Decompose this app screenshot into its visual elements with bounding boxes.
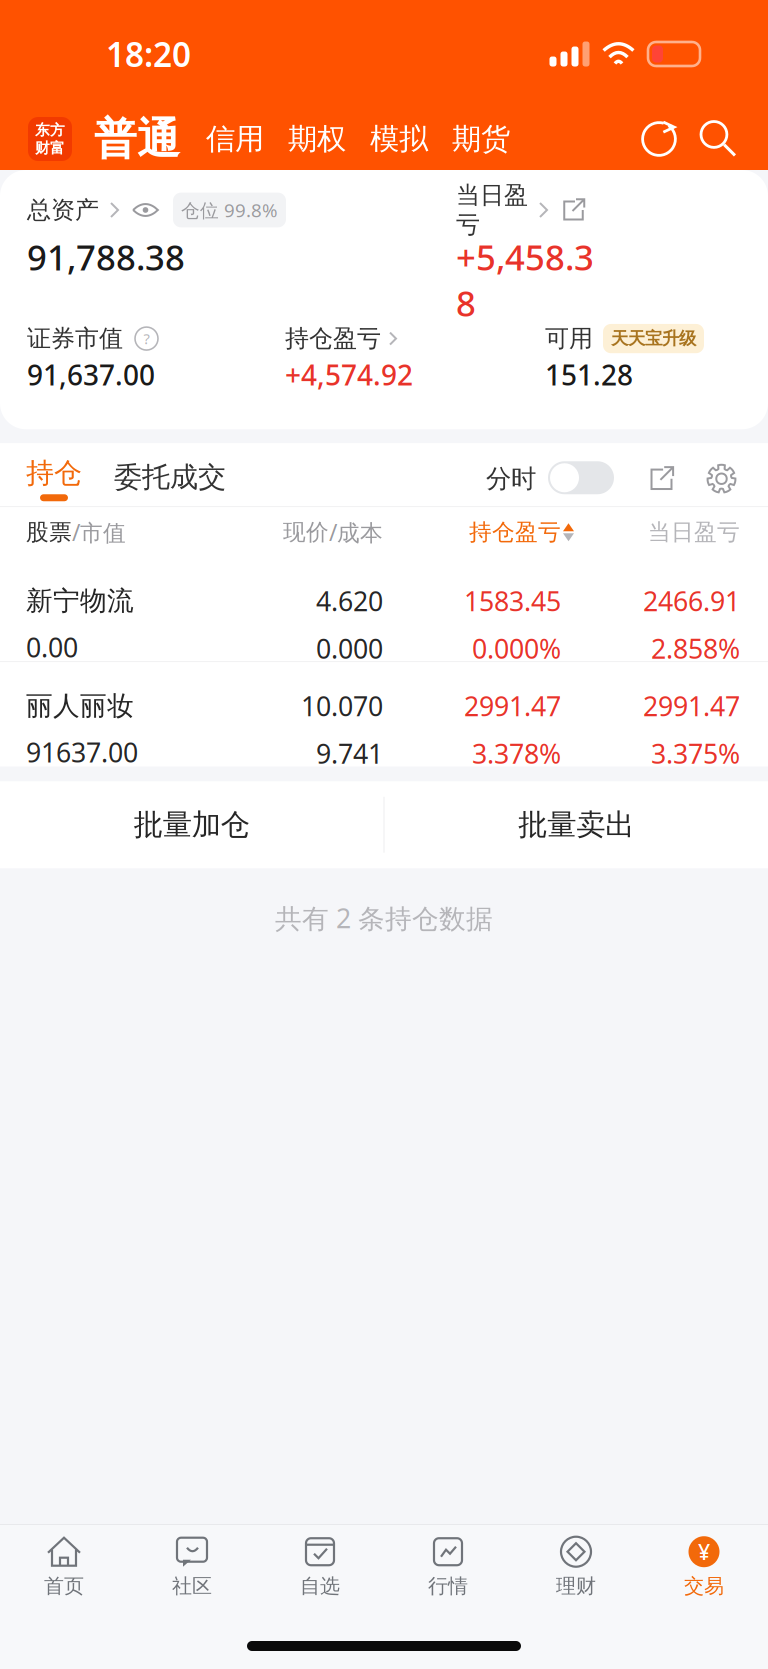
button[interactable]: 持仓 <box>0 456 82 506</box>
staticText: ¥ <box>698 1538 710 1566</box>
staticText: 期货 <box>452 121 510 157</box>
staticText: 持仓 <box>26 456 82 490</box>
staticText: 1583.45 <box>464 583 561 619</box>
button[interactable]: ¥ <box>640 1525 768 1609</box>
button[interactable]: 分享 <box>614 465 675 506</box>
button[interactable]: 刷新 <box>641 121 677 157</box>
staticText: 委托成交 <box>114 460 226 494</box>
staticText: 91,788.38 <box>27 234 185 280</box>
staticText: 信用 <box>206 121 264 157</box>
staticText: 持仓盈亏 <box>469 518 561 546</box>
staticText: 总资产 <box>27 195 99 225</box>
staticText: +5,458.38 <box>456 234 594 326</box>
staticText: 当日盈亏 <box>648 518 740 546</box>
staticText: 2466.91 <box>643 583 740 619</box>
staticText: 0.00 <box>26 629 78 665</box>
staticText: 0.000% <box>472 631 561 666</box>
staticText: 新宁物流 <box>26 585 134 617</box>
button[interactable]: 设置 <box>675 464 736 506</box>
staticText: 10.070 <box>301 688 383 724</box>
button[interactable]: 理财 <box>512 1525 640 1609</box>
staticText: 2991.47 <box>643 688 740 724</box>
button[interactable]: 普通 <box>72 113 180 165</box>
staticText: 交易 <box>684 1574 724 1598</box>
staticText: 首页 <box>44 1574 84 1598</box>
staticText: 行情 <box>428 1574 468 1598</box>
button[interactable]: 模拟 <box>346 121 428 157</box>
button[interactable]: 期权 <box>264 121 346 157</box>
staticText: 分时 <box>486 463 536 494</box>
button[interactable]: 新宁物流 <box>0 557 768 661</box>
staticText: 模拟 <box>370 121 428 157</box>
staticText: 3.378% <box>472 736 561 771</box>
staticText: 社区 <box>172 1574 212 1598</box>
staticText: 丽人丽妆 <box>26 690 134 722</box>
staticText: 151.28 <box>545 356 633 393</box>
staticText: 天天宝升级 <box>611 328 696 349</box>
staticText: 当日盈亏 <box>456 180 528 239</box>
staticText: 期权 <box>288 121 346 157</box>
button[interactable]: 搜索 <box>677 121 736 156</box>
staticText: 2991.47 <box>464 688 561 724</box>
staticText: 自选 <box>300 1574 340 1598</box>
staticText: ? <box>143 329 149 348</box>
staticText: /成本 <box>329 517 383 547</box>
button[interactable]: 社区 <box>128 1525 256 1609</box>
staticText: 4.620 <box>316 583 383 619</box>
staticText: 0.000 <box>316 631 383 666</box>
staticText: 东方 <box>35 121 65 139</box>
button[interactable]: 丽人丽妆 <box>0 662 768 766</box>
button[interactable]: 东方财富 <box>28 117 72 161</box>
button[interactable]: 批量加仓 <box>0 781 383 868</box>
staticText: 3.375% <box>651 736 740 771</box>
button[interactable]: 自选 <box>256 1525 384 1609</box>
staticText: 持仓盈亏 <box>285 324 381 353</box>
staticText: +4,574.92 <box>285 356 413 393</box>
staticText: 证券市值 <box>27 324 123 353</box>
button[interactable]: 行情 <box>384 1525 512 1609</box>
staticText: 91,637.00 <box>27 356 155 393</box>
staticText: 仓位 99.8% <box>181 198 278 222</box>
staticText: 共有 2 条持仓数据 <box>275 900 493 936</box>
staticText: 现价 <box>283 518 329 546</box>
staticText: 2.858% <box>651 631 740 666</box>
staticText: 91637.00 <box>26 734 138 770</box>
staticText: 普通 <box>94 113 180 165</box>
staticText: 理财 <box>556 1574 596 1598</box>
button[interactable]: 批量卖出 <box>384 781 768 868</box>
staticText: 批量卖出 <box>518 807 634 843</box>
staticText: 9.741 <box>316 736 383 771</box>
button[interactable]: 期货 <box>428 121 510 157</box>
staticText: 18:20 <box>106 32 191 76</box>
staticText: /市值 <box>72 517 126 547</box>
staticText: 财富 <box>35 139 65 157</box>
button[interactable]: 信用 <box>180 121 264 157</box>
button[interactable]: 分时开关 <box>536 461 614 506</box>
staticText: 股票 <box>26 518 72 546</box>
staticText: 批量加仓 <box>134 807 250 843</box>
button[interactable]: 委托成交 <box>82 460 226 506</box>
staticText: 可用 <box>545 324 593 353</box>
button[interactable]: 首页 <box>0 1525 128 1609</box>
